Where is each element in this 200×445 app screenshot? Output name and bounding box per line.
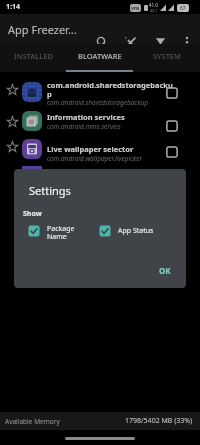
staticText: 42.1 [150, 8, 157, 13]
staticText: Available Memory [5, 417, 60, 426]
staticText: 67 [180, 5, 186, 12]
staticText: com.android.sharedstoragebacku [47, 80, 173, 90]
button[interactable]: INSTALLED [0, 44, 66, 72]
button[interactable] [99, 225, 111, 237]
staticText: VPN [131, 6, 140, 11]
staticText: p [47, 89, 52, 99]
button[interactable]: OK [150, 261, 180, 279]
button[interactable] [124, 36, 137, 49]
button[interactable] [166, 120, 178, 132]
staticText: OK [159, 265, 171, 276]
staticText: com.android.wallpaper.livepicker [47, 154, 143, 163]
staticText: Settings [29, 183, 71, 198]
staticText: BLOATWARE [78, 51, 122, 61]
button[interactable] [96, 36, 109, 49]
staticText: 1:14 [6, 2, 20, 12]
staticText: com.android.mms.service [47, 122, 121, 131]
staticText: INSTALLED [14, 51, 53, 61]
button[interactable] [154, 36, 167, 49]
button[interactable] [181, 36, 193, 48]
button[interactable]: BLOATWARE [66, 44, 133, 72]
button[interactable]: SYSTEM [133, 44, 200, 72]
staticText: App Freezer... [8, 22, 77, 37]
button[interactable] [28, 225, 40, 237]
button[interactable] [166, 87, 178, 99]
staticText: Information services [47, 112, 125, 122]
staticText: App Status [118, 226, 154, 236]
staticText: SYSTEM [153, 51, 181, 61]
staticText: com.android.sharedstoragebackup [47, 98, 149, 107]
staticText: Show [23, 209, 42, 219]
staticText: Package Name [47, 224, 75, 241]
button[interactable] [166, 146, 178, 158]
staticText: 1798/5402 MB (33%) [125, 416, 193, 426]
staticText: 41.0 [149, 2, 158, 8]
staticText: Live wallpaper selector [47, 144, 134, 154]
